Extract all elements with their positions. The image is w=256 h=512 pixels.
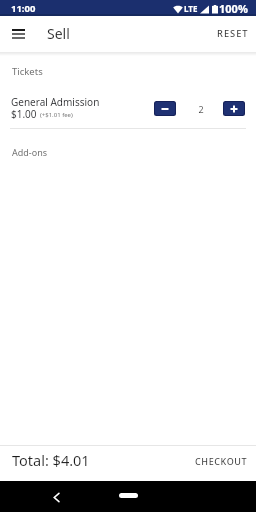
staticText: $1.00 (11, 107, 37, 121)
staticText: Tickets (12, 65, 43, 78)
staticText: RESET (217, 27, 249, 40)
button[interactable]: Increase quantity (223, 101, 245, 116)
staticText: Sell (47, 24, 70, 43)
staticText: Total: $4.01 (12, 450, 90, 470)
staticText: 2 (198, 103, 204, 115)
staticText: Add-ons (12, 146, 48, 158)
button[interactable]: CHECKOUT (185, 449, 256, 479)
staticText: LTE (184, 3, 198, 14)
button[interactable]: Back (48, 489, 64, 505)
button[interactable]: RESET (210, 19, 256, 50)
button[interactable]: Menu (0, 16, 34, 52)
staticText: 11:00 (11, 2, 36, 15)
staticText: 100% (219, 1, 248, 16)
staticText: General Admission (11, 95, 100, 109)
staticText: (+$1.01 fee) (40, 111, 73, 119)
button[interactable]: Decrease quantity (154, 101, 176, 116)
button[interactable]: Home (119, 493, 138, 498)
staticText: CHECKOUT (195, 455, 248, 467)
